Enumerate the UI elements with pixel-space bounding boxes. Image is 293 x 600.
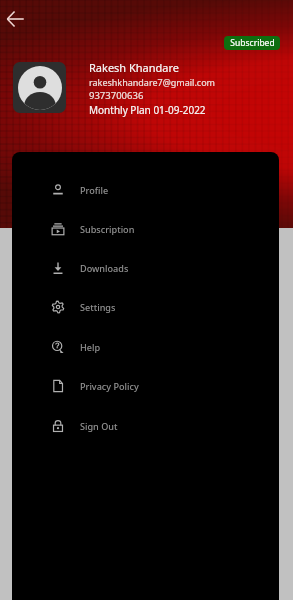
staticText: Downloads [80, 262, 129, 274]
staticText: Rakesh Khandare [89, 60, 180, 75]
staticText: Privacy Policy [80, 380, 139, 392]
staticText: Profile [80, 184, 109, 196]
button[interactable]: Subscription [12, 209, 279, 249]
staticText: Monthly Plan 01-09-2022 [89, 103, 206, 117]
button[interactable]: Privacy Policy [12, 366, 279, 406]
staticText: 9373700636 [89, 89, 144, 102]
staticText: Settings [80, 301, 116, 313]
staticText: rakeshkhandare7@gmail.com [89, 76, 215, 88]
button[interactable]: Profile [12, 170, 279, 210]
staticText: Sign Out [80, 420, 118, 432]
button[interactable]: Subscribed [224, 36, 280, 50]
staticText: Help [80, 341, 101, 353]
button[interactable]: Settings [12, 287, 279, 327]
button[interactable]: Help [12, 327, 279, 367]
staticText: Subscribed [230, 37, 275, 49]
button[interactable]: Downloads [12, 248, 279, 288]
button[interactable]: Back [3, 6, 29, 32]
button[interactable]: Sign Out [12, 406, 279, 446]
staticText: Subscription [80, 223, 135, 235]
